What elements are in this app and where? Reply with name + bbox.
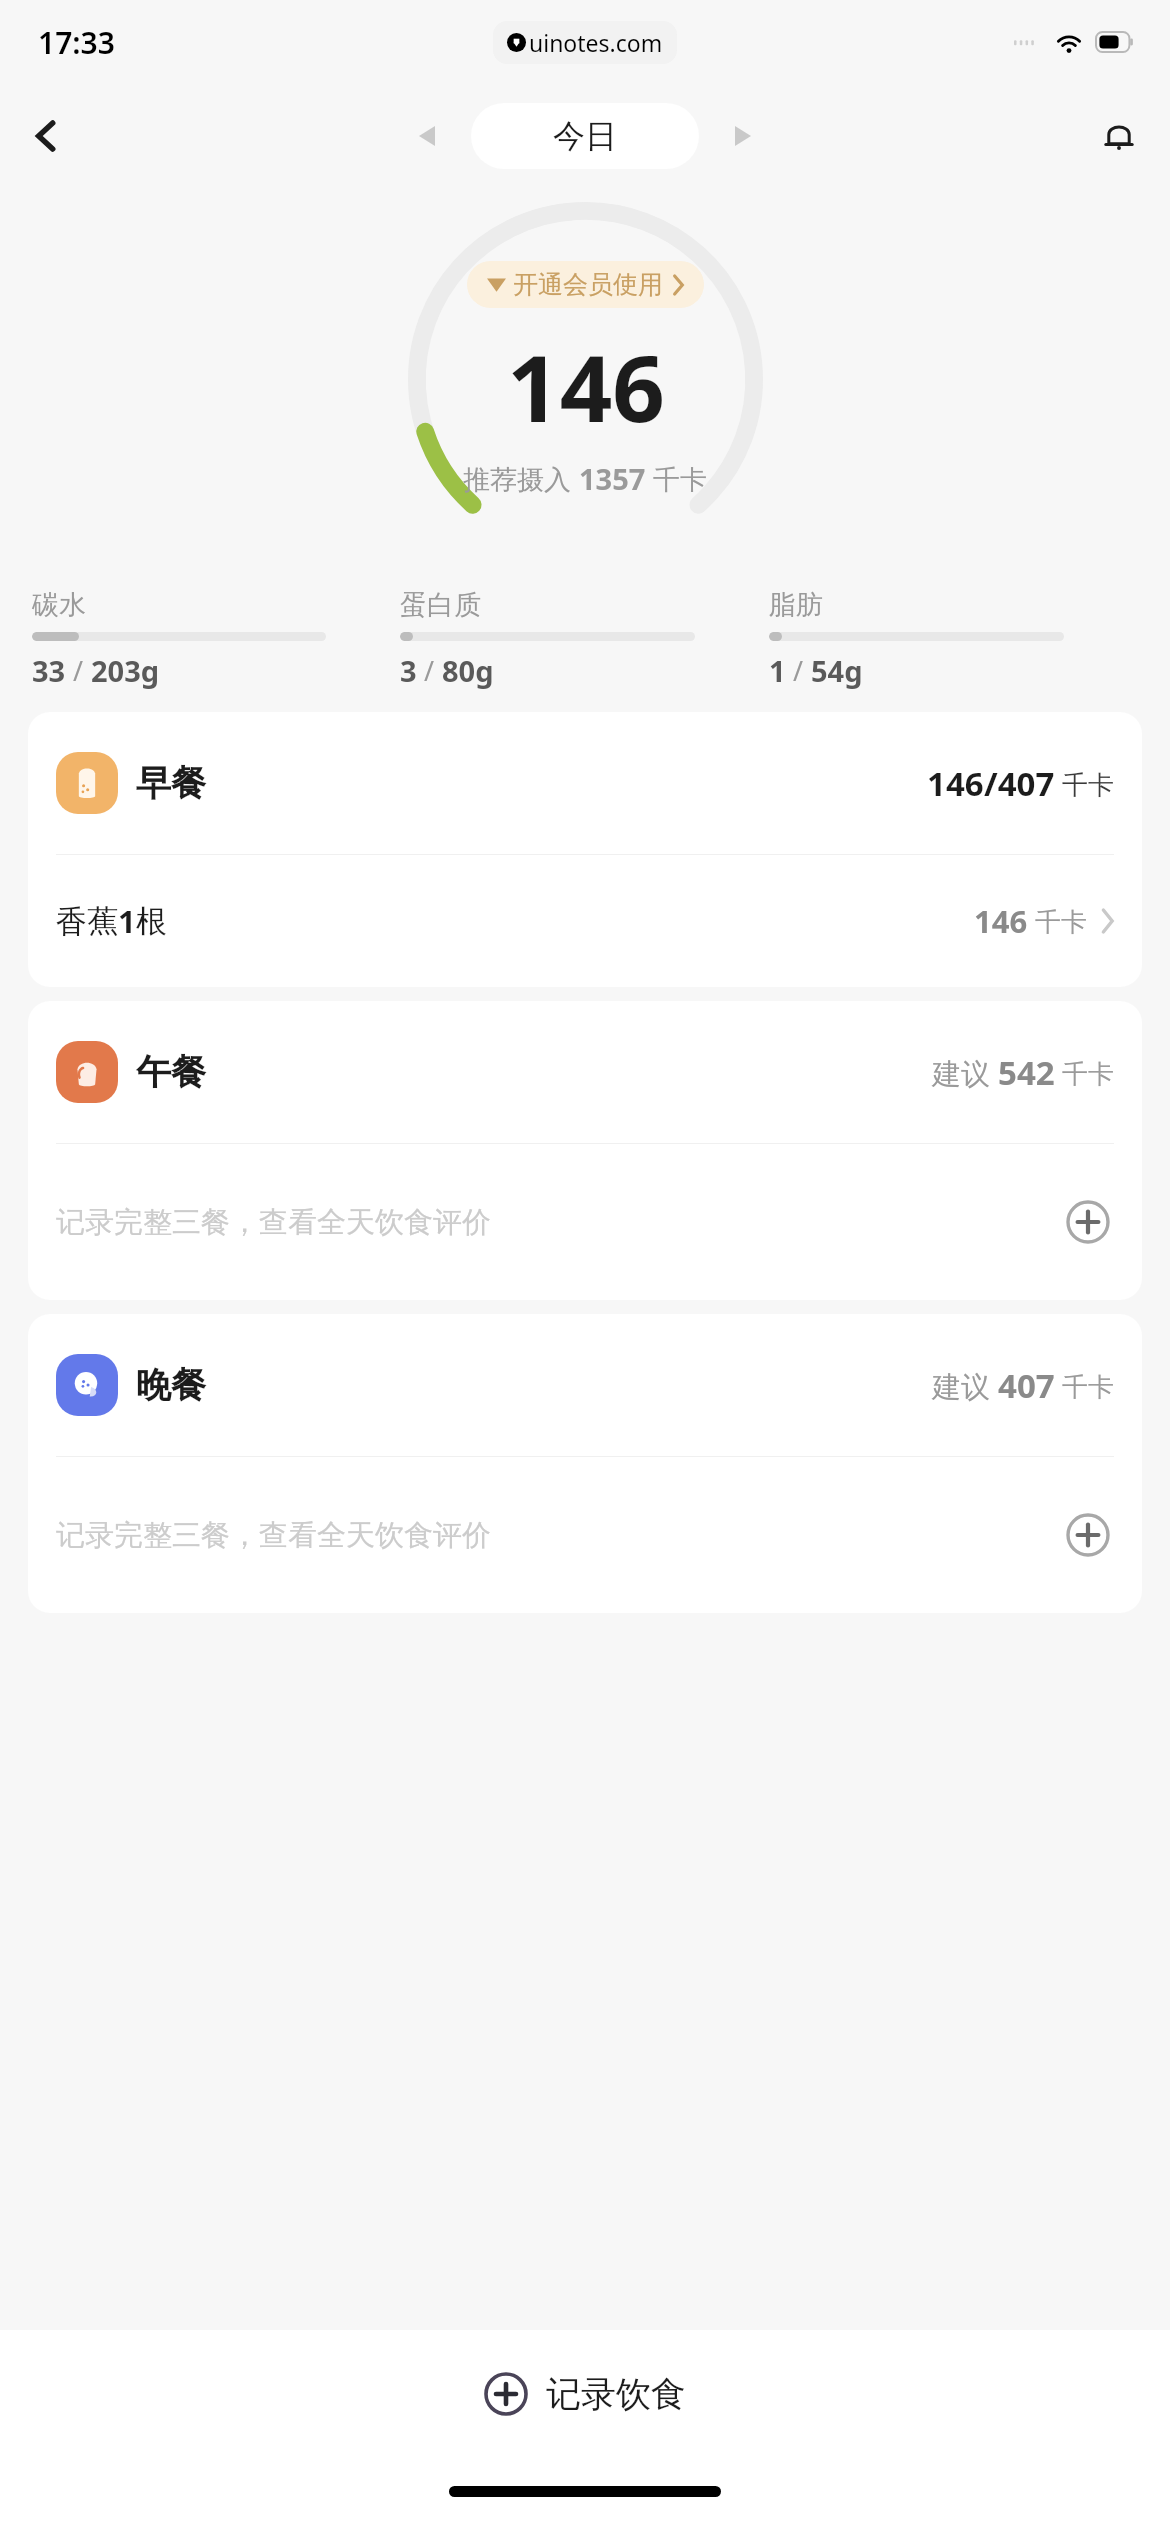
staticText: 碳水 [32, 588, 86, 622]
staticText: 记录饮食 [546, 2372, 686, 2416]
button[interactable]: Previous day [401, 110, 453, 162]
button[interactable]: 记录完整三餐，查看全天饮食评价 [28, 1144, 1142, 1300]
staticText: 1 [118, 900, 136, 942]
staticText: 1357 [579, 459, 646, 498]
staticText: 记录完整三餐，查看全天饮食评价 [56, 1204, 491, 1241]
staticText: / [417, 652, 442, 689]
staticText: 千卡 [646, 460, 708, 497]
staticText: 午餐 [136, 1050, 206, 1094]
button[interactable]: 午餐 [28, 1001, 1142, 1143]
staticText: 146 [927, 761, 984, 806]
staticText: 晚餐 [136, 1363, 206, 1407]
staticText: 3 [400, 651, 417, 690]
staticText: 千卡 [1055, 766, 1114, 802]
staticText: 千卡 [1028, 903, 1087, 939]
staticText: uinotes.com [529, 27, 663, 58]
staticText: 脂肪 [769, 588, 823, 622]
staticText: 建议 [932, 1366, 998, 1406]
button[interactable]: Next day [717, 110, 769, 162]
staticText: 33 [32, 651, 66, 690]
staticText: 80g [442, 651, 494, 690]
button[interactable]: Add food [1062, 1509, 1114, 1561]
button[interactable]: Back [18, 107, 76, 165]
staticText: 记录完整三餐，查看全天饮食评价 [56, 1517, 491, 1554]
button[interactable]: Notifications [1090, 107, 1148, 165]
staticText: 407 [998, 1363, 1055, 1408]
staticText: 今日 [553, 116, 617, 156]
staticText: 146 [507, 324, 665, 449]
staticText: 17:33 [38, 22, 115, 63]
staticText: 根 [136, 902, 167, 941]
button[interactable]: 记录饮食 [0, 2330, 1170, 2458]
staticText: 香蕉 [56, 902, 118, 941]
staticText: 千卡 [1055, 1055, 1114, 1091]
staticText: /407 [984, 761, 1055, 806]
button[interactable]: 香蕉 [28, 855, 1142, 987]
staticText: 开通会员使用 [513, 269, 663, 300]
staticText: 千卡 [1055, 1368, 1114, 1404]
button[interactable]: 开通会员使用 [467, 261, 704, 308]
staticText: 蛋白质 [400, 588, 481, 622]
staticText: 1 [769, 651, 786, 690]
staticText: 146 [974, 900, 1028, 942]
staticText: 542 [998, 1050, 1055, 1095]
button[interactable]: 今日 [471, 103, 699, 169]
staticText: 早餐 [136, 761, 206, 805]
staticText: 203g [91, 651, 160, 690]
staticText: 建议 [932, 1053, 998, 1093]
staticText: / [66, 652, 91, 689]
button[interactable]: 晚餐 [28, 1314, 1142, 1456]
button[interactable]: 记录完整三餐，查看全天饮食评价 [28, 1457, 1142, 1613]
staticText: 推荐摄入 [463, 460, 579, 497]
staticText: 54g [811, 651, 863, 690]
staticText: / [786, 652, 811, 689]
button[interactable]: 早餐 [28, 712, 1142, 854]
button[interactable]: Add food [1062, 1196, 1114, 1248]
